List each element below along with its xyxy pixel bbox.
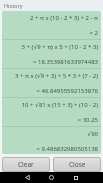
button[interactable]: Clear xyxy=(2,157,50,172)
staticText: Clear xyxy=(18,160,34,169)
staticText: 3 + (√9 + π) x 5 + (10 - 2 * 3) xyxy=(5,43,98,51)
staticText: = 2 xyxy=(5,29,98,37)
staticText: 10 + √81 x (15 + 3) + (10 - 2) xyxy=(5,101,98,109)
button[interactable]: Close xyxy=(53,157,101,172)
staticText: = 46.84955592153876 xyxy=(5,87,98,95)
button[interactable]: 10 + √81 x (15 + 3) + (10 - 2) xyxy=(2,98,101,127)
staticText: = 9.486832980505138 xyxy=(5,145,98,153)
staticText: 2 + π x (10 - 2 * 3) + 2 - π xyxy=(5,14,98,22)
button[interactable]: 3 + (√9 + π) x 5 + (10 - 2 * 3) xyxy=(2,40,101,69)
button[interactable]: Home xyxy=(46,172,57,183)
button[interactable]: 2 + π x (10 - 2 * 3) + 2 - π xyxy=(2,11,101,40)
button[interactable]: 3 + π x (√9 + 3) + 5 * 3 + (7 - 2) xyxy=(2,69,101,98)
staticText: History xyxy=(4,2,23,9)
staticText: = 30.25 xyxy=(5,116,98,124)
button[interactable]: Recents xyxy=(70,172,81,183)
staticText: Close xyxy=(69,160,86,169)
button[interactable]: Back xyxy=(22,172,33,183)
staticText: = 18.353981633974483 xyxy=(5,58,98,66)
staticText: √90 xyxy=(5,130,98,138)
button[interactable]: √90 xyxy=(2,127,101,154)
staticText: 3 + π x (√9 + 3) + 5 * 3 + (7 - 2) xyxy=(5,72,98,80)
